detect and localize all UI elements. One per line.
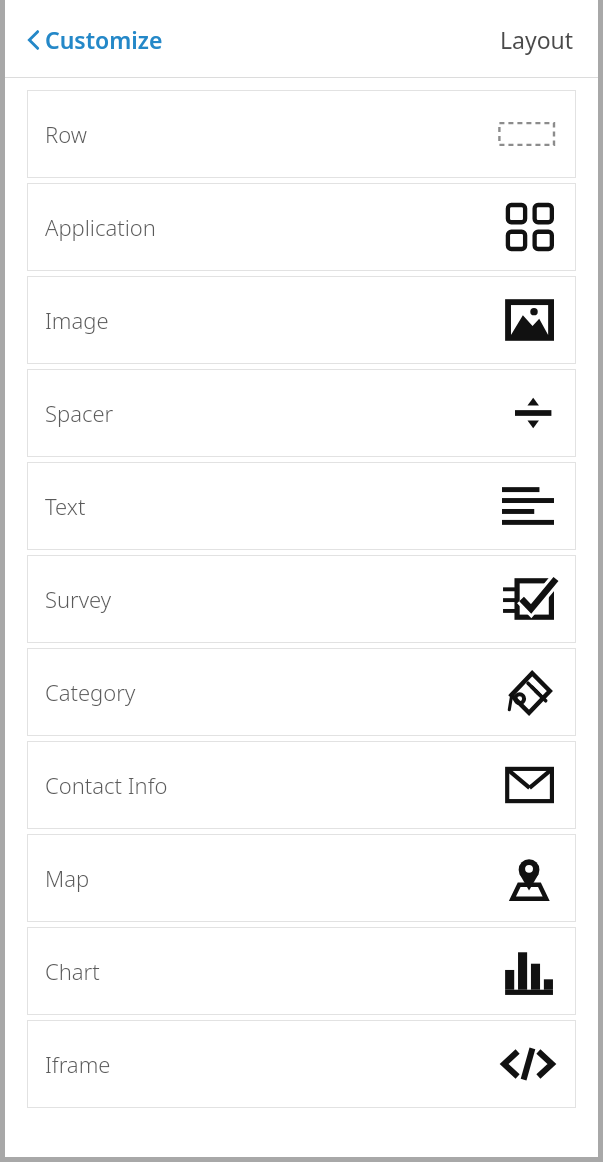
other: Spacer [502,387,554,439]
other: Survey [502,573,554,625]
staticText: Spacer [45,398,114,428]
other: Row [502,108,554,160]
button[interactable]: Category [27,648,576,736]
staticText: Layout [500,24,574,55]
staticText: Application [45,212,156,242]
button[interactable]: Map [27,834,576,922]
other: Image [502,294,554,346]
staticText: Customize [45,24,163,55]
button[interactable]: Chart [27,927,576,1015]
other: Application [502,201,554,253]
staticText: Row [45,119,87,149]
other: Text [502,480,554,532]
other: Map [502,852,554,904]
other: Iframe [502,1038,554,1090]
other: Chart [502,945,554,997]
staticText: Map [45,863,90,893]
other: Category [502,666,554,718]
staticText: Iframe [45,1049,111,1079]
button[interactable]: Iframe [27,1020,576,1108]
staticText: Survey [45,584,112,614]
staticText: Text [45,491,86,521]
other: Contact Info [502,759,554,811]
staticText: Category [45,677,136,707]
button[interactable]: Row [27,90,576,178]
staticText: Contact Info [45,770,168,800]
staticText: Chart [45,956,100,986]
button[interactable]: Application [27,183,576,271]
button[interactable]: Customize [21,18,169,61]
button[interactable]: Contact Info [27,741,576,829]
button[interactable]: Survey [27,555,576,643]
button[interactable]: Text [27,462,576,550]
button[interactable]: Image [27,276,576,364]
button[interactable]: Spacer [27,369,576,457]
staticText: Image [45,305,109,335]
button[interactable]: Layout [494,18,580,61]
